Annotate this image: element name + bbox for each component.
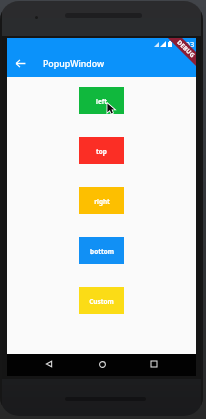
staticText: bottom (90, 247, 114, 256)
staticText: top (96, 147, 107, 156)
staticText: Custom (89, 297, 114, 306)
button[interactable]: top (79, 137, 124, 164)
button[interactable]: right (79, 187, 124, 214)
staticText: 14:03 (175, 39, 195, 49)
button[interactable]: Recents (138, 353, 170, 375)
button[interactable]: Home (86, 353, 118, 375)
staticText: PopupWindow (43, 58, 105, 70)
button[interactable]: Back (7, 50, 33, 77)
staticText: DEBUG (175, 38, 196, 60)
button[interactable]: left (79, 87, 124, 114)
button[interactable]: bottom (79, 237, 124, 264)
staticText: left (96, 97, 107, 106)
button[interactable]: Back (33, 353, 65, 375)
staticText: right (94, 197, 110, 206)
button[interactable]: Custom (79, 287, 124, 314)
